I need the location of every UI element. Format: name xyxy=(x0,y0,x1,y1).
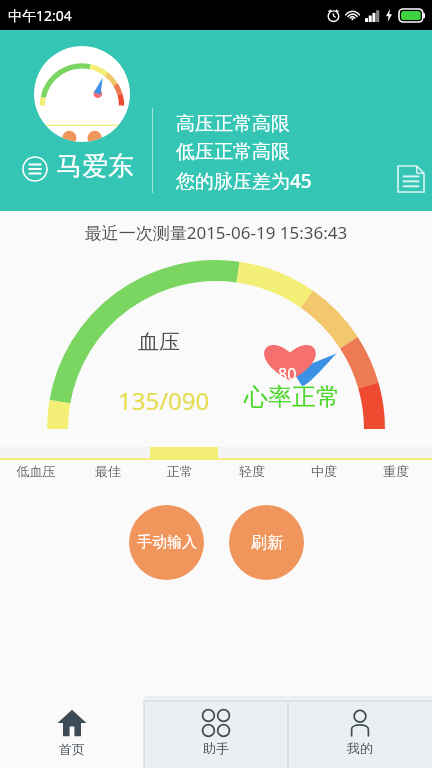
button[interactable]: 手动输入 xyxy=(129,505,204,580)
staticText: 血压 xyxy=(138,329,180,355)
staticText: 助手 xyxy=(203,740,229,756)
staticText: 正常 xyxy=(144,463,216,479)
staticText: 低压正常高限 xyxy=(176,140,290,164)
staticText: 低血压 xyxy=(0,463,72,479)
other: Assistant xyxy=(202,709,230,737)
staticText: 重度 xyxy=(360,463,432,479)
staticText: 135/090 xyxy=(118,384,210,417)
staticText: 刷新 xyxy=(251,533,283,553)
button[interactable]: Profile photo xyxy=(34,46,130,142)
staticText: 我的 xyxy=(347,740,373,756)
staticText: 高压正常高限 xyxy=(176,112,290,136)
staticText: 绿色资源网 xyxy=(290,698,410,728)
staticText: 心率正常 xyxy=(244,382,340,412)
other: Home xyxy=(57,708,87,738)
other: My profile xyxy=(346,709,374,737)
button[interactable]: My profile xyxy=(288,696,432,768)
button[interactable]: Home xyxy=(0,696,144,768)
staticText: 轻度 xyxy=(216,463,288,479)
staticText: www.downcc.com xyxy=(296,726,406,744)
staticText: 中午12:04 xyxy=(8,6,72,25)
staticText: 您的脉压差为45 xyxy=(176,168,312,194)
staticText: 最近一次测量2015-06-19 15:36:43 xyxy=(0,221,432,244)
button[interactable]: Assistant xyxy=(144,696,288,768)
staticText: 手动输入 xyxy=(137,533,197,552)
staticText: 马爱东 xyxy=(56,150,134,183)
button[interactable]: 刷新 xyxy=(229,505,304,580)
staticText: 首页 xyxy=(59,741,85,757)
staticText: 中度 xyxy=(288,463,360,479)
staticText: 最佳 xyxy=(72,463,144,479)
button[interactable]: Menu xyxy=(22,156,48,182)
staticText: 80 xyxy=(278,363,297,385)
button[interactable]: Report xyxy=(396,164,426,194)
